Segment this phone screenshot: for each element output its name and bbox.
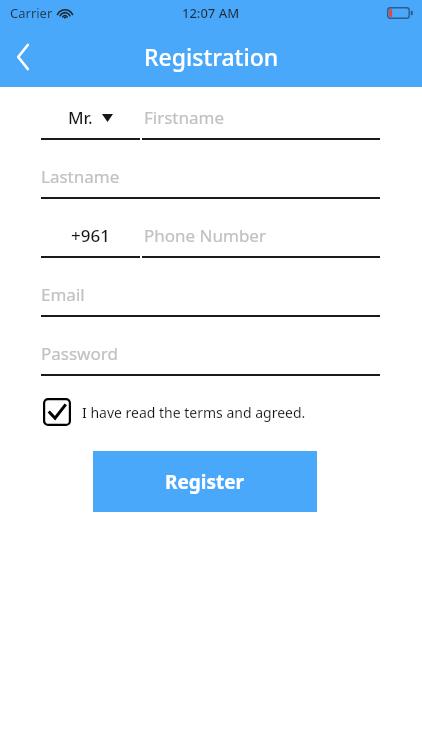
staticText: Register — [165, 469, 245, 495]
button[interactable]: I have read the terms and agreed. — [43, 398, 402, 426]
button[interactable]: Firstname — [142, 106, 380, 140]
button[interactable]: Mr. — [41, 106, 140, 140]
button[interactable]: Email — [41, 283, 380, 317]
staticText: Registration — [144, 41, 279, 72]
button[interactable]: Back — [0, 33, 47, 81]
staticText: Carrier — [10, 4, 53, 22]
staticText: Mr. — [68, 106, 93, 129]
button[interactable]: Lastname — [41, 165, 380, 199]
staticText: Lastname — [41, 165, 120, 188]
button[interactable]: Password — [41, 342, 380, 376]
button[interactable]: +961 — [41, 224, 140, 258]
staticText: +961 — [71, 224, 110, 247]
staticText: 12:07 AM — [182, 4, 240, 22]
staticText: Firstname — [144, 106, 225, 129]
staticText: Email — [41, 283, 85, 306]
staticText: Phone Number — [144, 224, 266, 247]
button[interactable]: Phone Number — [142, 224, 380, 258]
staticText: I have read the terms and agreed. — [82, 403, 306, 422]
button[interactable]: Register — [93, 451, 317, 512]
staticText: Password — [41, 342, 118, 365]
